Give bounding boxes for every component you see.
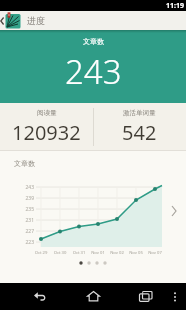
staticText: Oct 30 — [51, 250, 69, 256]
staticText: 239 — [22, 195, 34, 202]
staticText: 223 — [22, 239, 34, 246]
staticText: Oct 29 — [32, 250, 50, 256]
button[interactable] — [172, 292, 178, 303]
staticText: Nov 07 — [146, 250, 164, 256]
button[interactable] — [139, 291, 153, 303]
staticText: Oct 31 — [70, 250, 88, 256]
button[interactable]: 阅读量 — [0, 103, 93, 150]
button[interactable]: 文章数 — [0, 151, 186, 283]
staticText: 243 — [65, 49, 122, 94]
staticText: 文章数 — [14, 159, 35, 168]
staticText: Nov 02 — [108, 250, 126, 256]
staticText: 120932 — [12, 119, 81, 146]
staticText: 进度 — [27, 15, 45, 26]
button[interactable]: 文章数 — [0, 30, 186, 103]
staticText: Nov 05 — [127, 250, 145, 256]
staticText: 激活单词量 — [123, 109, 156, 117]
button[interactable] — [87, 291, 100, 303]
staticText: 11:19 — [166, 1, 184, 11]
staticText: 227 — [22, 228, 34, 235]
button[interactable] — [33, 291, 47, 303]
staticText: 542 — [122, 119, 157, 146]
staticText: 231 — [22, 217, 34, 224]
button[interactable]: 激活单词量 — [93, 103, 186, 150]
staticText: 235 — [22, 206, 34, 213]
staticText: 文章数 — [83, 37, 104, 46]
staticText: 243 — [22, 184, 34, 191]
staticText: Nov 01 — [89, 250, 107, 256]
staticText: 阅读量 — [37, 109, 57, 117]
button[interactable]: 进度 — [0, 11, 186, 30]
